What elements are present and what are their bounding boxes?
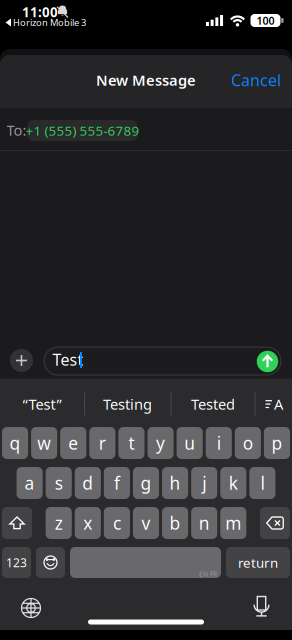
staticText: h	[170, 471, 181, 494]
staticText: z	[55, 511, 63, 534]
staticText: Horizon Mobile 3	[13, 16, 86, 29]
button[interactable]: t	[118, 427, 144, 459]
button[interactable]: +1 (555) 555-6789	[27, 120, 138, 141]
staticText: +1 (555) 555-6789	[25, 122, 139, 139]
button[interactable]: Add attachment	[10, 349, 33, 372]
button[interactable]: u	[177, 427, 203, 459]
staticText: e	[68, 431, 78, 454]
button[interactable]: e	[60, 427, 86, 459]
button[interactable]: q	[2, 427, 28, 459]
staticText: r	[99, 431, 106, 454]
button[interactable]: l	[249, 467, 275, 499]
staticText: Cancel	[231, 69, 281, 91]
button[interactable]: w	[31, 427, 57, 459]
button[interactable]: g	[133, 467, 159, 499]
button[interactable]: Autofill	[265, 395, 283, 413]
button[interactable]: “Test”	[2, 386, 82, 422]
button[interactable]: Emoji	[36, 547, 65, 578]
staticText: l	[260, 471, 264, 494]
button[interactable]: b	[162, 507, 188, 539]
staticText: t	[128, 431, 134, 454]
button[interactable]: return	[226, 547, 290, 578]
button[interactable]: x	[75, 507, 101, 539]
button[interactable]: p	[264, 427, 290, 459]
button[interactable]: c	[104, 507, 130, 539]
button[interactable]: s	[46, 467, 72, 499]
button[interactable]: n	[191, 507, 217, 539]
staticText: Test	[52, 349, 83, 370]
button[interactable]: Testing	[87, 386, 167, 422]
staticText: i	[217, 431, 221, 454]
staticText: s	[55, 471, 63, 494]
staticText: o	[243, 431, 253, 454]
staticText: c	[113, 511, 121, 534]
staticText: j	[202, 471, 206, 494]
staticText: a	[25, 471, 35, 494]
button[interactable]: Next keyboard	[21, 598, 40, 617]
staticText: b	[170, 511, 181, 534]
button[interactable]: k	[220, 467, 246, 499]
staticText: Testing	[103, 394, 152, 414]
staticText: “Test”	[22, 394, 61, 414]
button[interactable]: v	[133, 507, 159, 539]
staticText: return	[238, 554, 278, 571]
button[interactable]: f	[104, 467, 130, 499]
button[interactable]: Dictation	[254, 596, 269, 616]
button[interactable]: d	[75, 467, 101, 499]
staticText: 100	[256, 13, 274, 28]
staticText: x	[83, 511, 92, 534]
staticText: w	[37, 431, 51, 454]
button[interactable]: m	[220, 507, 246, 539]
staticText: k	[229, 471, 238, 494]
staticText: d	[82, 471, 93, 494]
button[interactable]: Space	[70, 547, 221, 578]
button[interactable]: a	[17, 467, 43, 499]
staticText: n	[199, 511, 210, 534]
staticText: p	[271, 431, 282, 454]
staticText: New Message	[96, 70, 196, 90]
staticText: y	[156, 431, 165, 454]
staticText: m	[225, 511, 241, 534]
button[interactable]: Send	[257, 351, 278, 372]
staticText: 11:00	[22, 3, 58, 21]
staticText: EN FR	[199, 570, 217, 578]
staticText: 123	[6, 554, 27, 570]
button[interactable]: Shift	[2, 507, 32, 539]
staticText: v	[141, 511, 150, 534]
button[interactable]: Delete	[260, 507, 290, 539]
button[interactable]: h	[162, 467, 188, 499]
staticText: g	[140, 471, 151, 494]
button[interactable]: 123	[2, 547, 31, 578]
staticText: To:	[6, 120, 26, 140]
button[interactable]: z	[46, 507, 72, 539]
staticText: Tested	[191, 394, 235, 414]
staticText: q	[10, 431, 21, 454]
button[interactable]: j	[191, 467, 217, 499]
button[interactable]: Tested	[174, 386, 252, 422]
staticText: f	[114, 471, 120, 494]
button[interactable]: i	[206, 427, 232, 459]
staticText: u	[184, 431, 195, 454]
button[interactable]: o	[235, 427, 261, 459]
button[interactable]: y	[147, 427, 174, 459]
staticText: A	[274, 394, 283, 414]
button[interactable]: r	[89, 427, 115, 459]
button[interactable]: Cancel	[231, 65, 281, 95]
